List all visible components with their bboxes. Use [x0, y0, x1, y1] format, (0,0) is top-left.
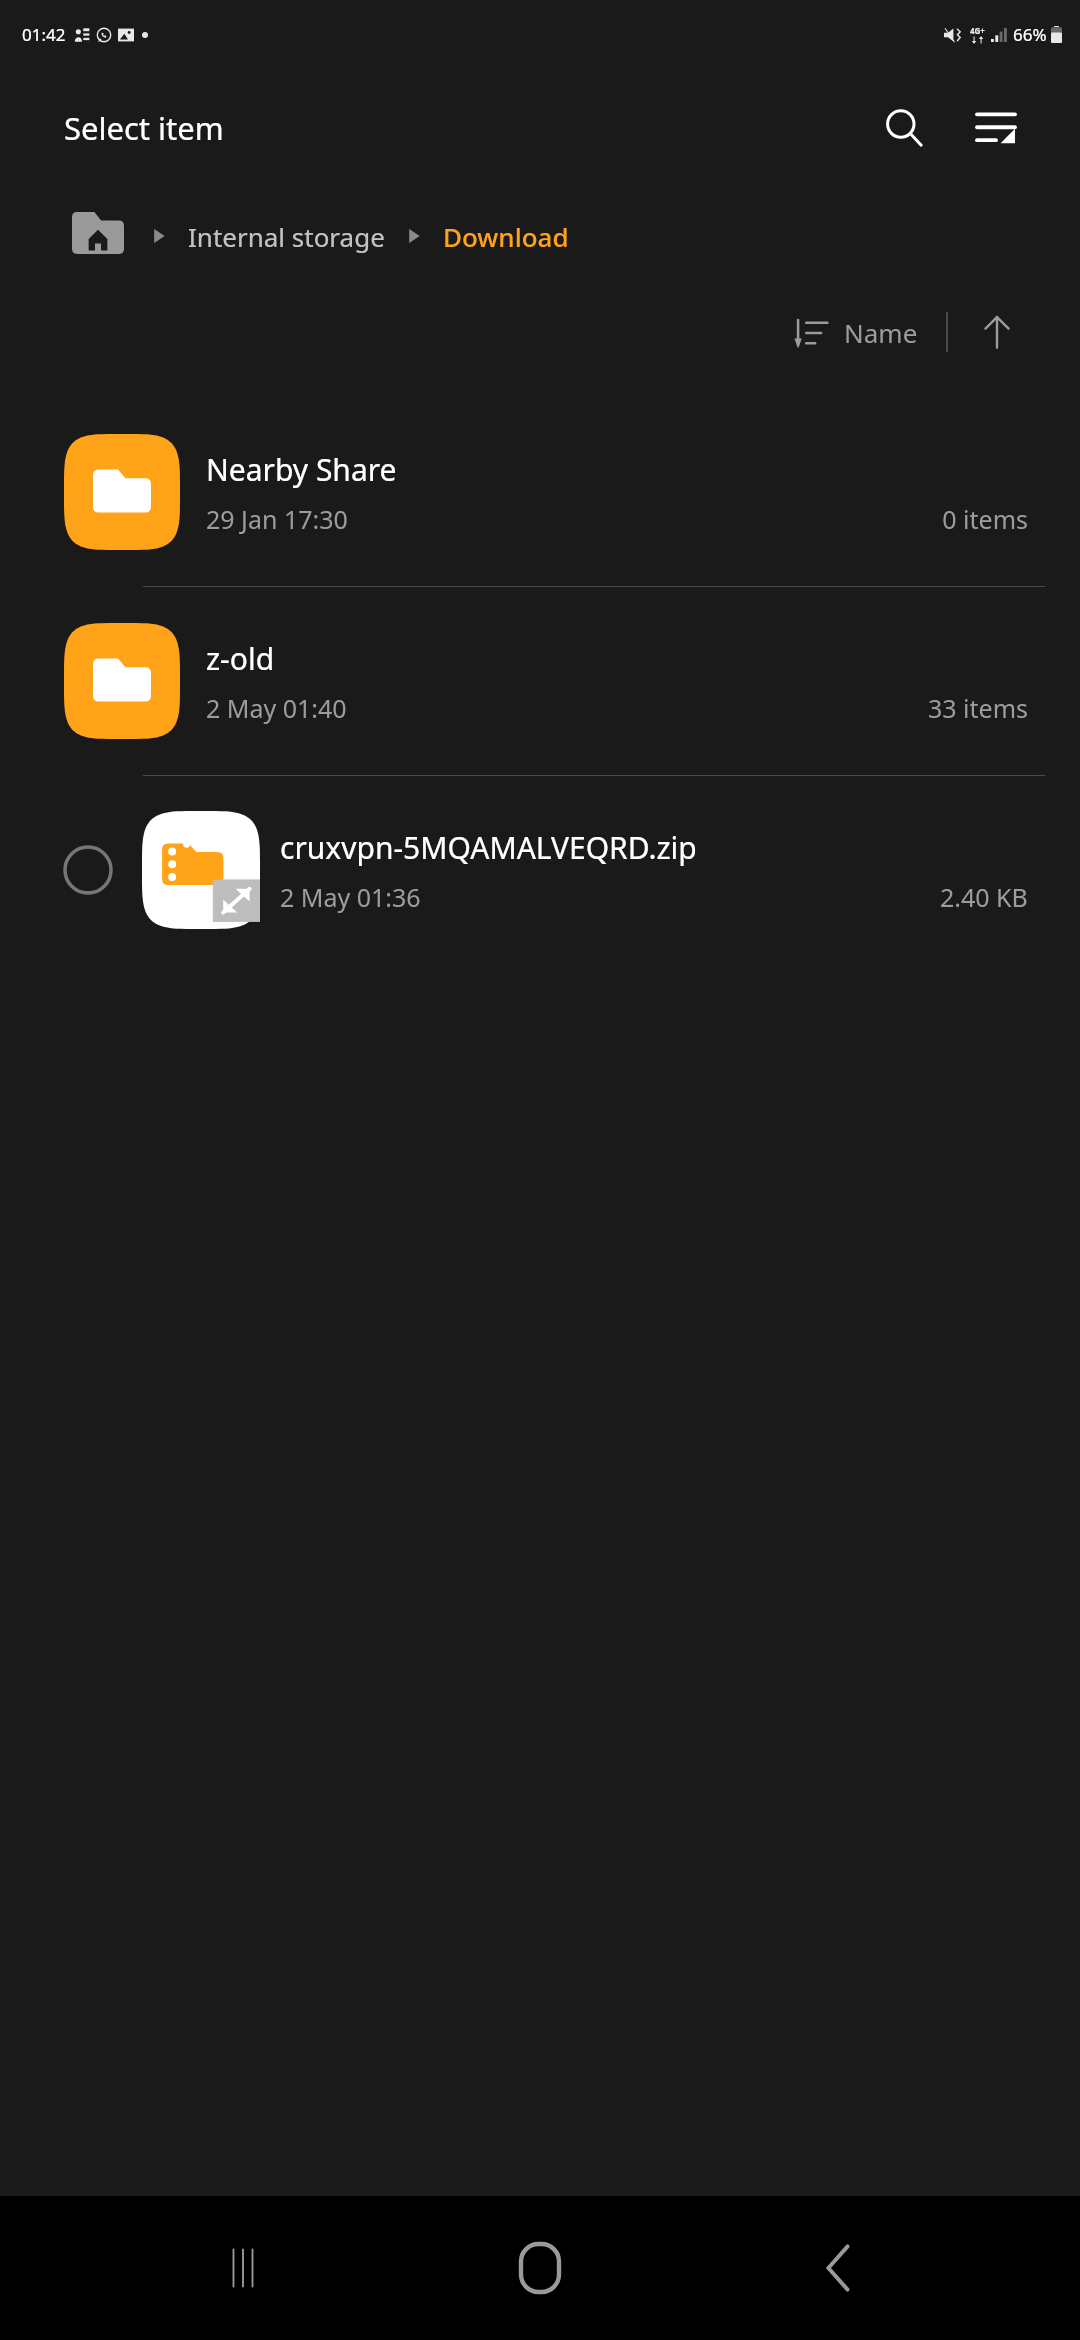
button[interactable]: Back [783, 2213, 893, 2323]
staticText: 2 May 01:40 [206, 691, 347, 725]
staticText: Select item [64, 107, 224, 149]
staticText: Download [443, 219, 569, 254]
button[interactable]: Sort ascending [966, 301, 1028, 363]
staticText: cruxvpn-5MQAMALVEQRD.zip [280, 827, 697, 868]
button[interactable]: Name [786, 307, 926, 358]
button[interactable]: Internal storage [188, 219, 385, 254]
staticText: 66% [1013, 23, 1047, 46]
button[interactable]: Select cruxvpn-5MQAMALVEQRD.zip [56, 838, 120, 902]
staticText: Nearby Share [206, 449, 397, 490]
staticText: Internal storage [188, 219, 385, 254]
button[interactable]: Recent apps [188, 2213, 298, 2323]
button[interactable]: Download [443, 219, 569, 254]
staticText: 01:42 [22, 23, 66, 46]
button[interactable]: Home [485, 2213, 595, 2323]
button[interactable]: View options [960, 92, 1032, 164]
staticText: 29 Jan 17:30 [206, 502, 348, 536]
staticText: 2 May 01:36 [280, 880, 421, 914]
staticText: z-old [206, 638, 275, 679]
button[interactable]: Nearby Share [0, 398, 1080, 586]
button[interactable]: Search [868, 92, 940, 164]
staticText: 2.40 KB [940, 880, 1028, 914]
button[interactable]: z-old [0, 587, 1080, 775]
staticText: 0 items [942, 502, 1028, 536]
staticText: 33 items [927, 691, 1028, 725]
button[interactable]: Home [70, 208, 126, 264]
button[interactable]: Select cruxvpn-5MQAMALVEQRD.zip [0, 776, 1080, 964]
staticText: Name [844, 315, 918, 350]
staticText: 4G+ [970, 25, 985, 36]
